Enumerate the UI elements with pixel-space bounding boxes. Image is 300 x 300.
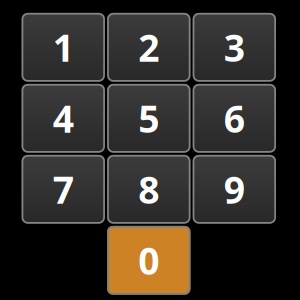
button[interactable]: 2	[107, 13, 190, 82]
button[interactable]: 5	[107, 84, 190, 153]
button[interactable]: 8	[107, 155, 190, 224]
staticText: 9	[224, 164, 245, 214]
button[interactable]: 6	[193, 84, 276, 153]
staticText: 4	[53, 93, 74, 143]
staticText: 0	[138, 235, 159, 285]
staticText: 6	[224, 93, 245, 143]
button[interactable]: 0	[107, 226, 190, 295]
button[interactable]: 7	[22, 155, 105, 224]
button[interactable]: 1	[22, 13, 105, 82]
staticText: 2	[138, 22, 159, 72]
staticText: 7	[53, 164, 74, 214]
button[interactable]: 4	[22, 84, 105, 153]
button[interactable]: 3	[193, 13, 276, 82]
staticText: 1	[53, 22, 74, 72]
button[interactable]: 9	[193, 155, 276, 224]
staticText: 8	[138, 164, 159, 214]
staticText: 3	[224, 22, 245, 72]
staticText: 5	[138, 93, 159, 143]
